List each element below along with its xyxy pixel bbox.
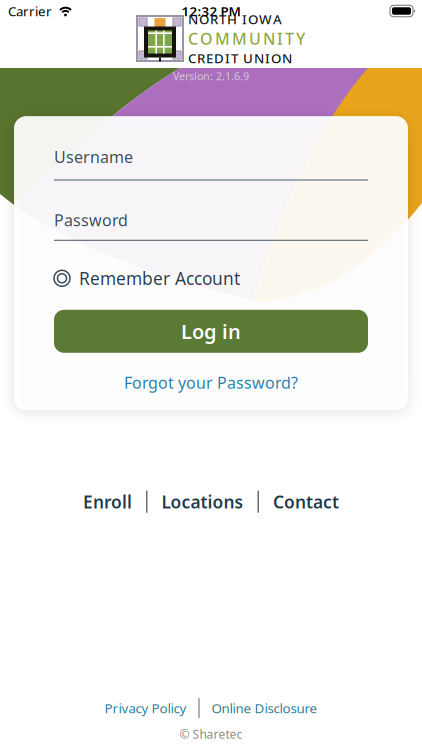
staticText: Enroll [83,490,132,513]
button[interactable]: Privacy Policy [104,699,186,717]
button[interactable]: Enroll [83,490,132,513]
staticText: Locations [161,490,243,513]
staticText: Carrier [8,2,52,20]
staticText: Forgot your Password? [124,372,298,393]
button[interactable]: Online Disclosure [211,699,317,717]
button[interactable]: Username [54,146,368,180]
staticText: 12:32 PM [181,2,240,20]
staticText: Remember Account [79,267,240,290]
staticText: © Sharetec [179,726,242,742]
staticText: Contact [273,490,339,513]
staticText: Online Disclosure [211,699,317,717]
button[interactable]: Forgot your Password? [124,372,298,393]
staticText: Privacy Policy [104,699,186,717]
button[interactable]: Remember Account [54,267,240,290]
staticText: Password [54,209,128,231]
staticText: N O R T H I O W A [188,10,282,28]
staticText: C O M M U N I T Y [188,28,305,49]
staticText: Username [54,146,133,167]
button[interactable]: Log in [54,310,368,353]
button[interactable]: Contact [273,490,339,513]
button[interactable]: Password [54,209,368,241]
staticText: C R E D I T U N I O N [188,49,292,67]
button[interactable]: Locations [161,490,243,513]
staticText: Version: 2.1.6.9 [173,69,249,83]
staticText: Log in [181,318,241,345]
